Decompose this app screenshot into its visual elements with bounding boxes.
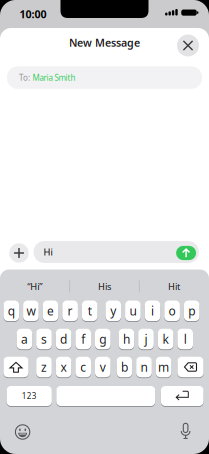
button[interactable]: v [95, 356, 111, 378]
button[interactable]: q [3, 300, 19, 322]
staticText: e [47, 303, 54, 319]
staticText: New Message [69, 35, 140, 50]
button[interactable]: Return [161, 385, 203, 406]
staticText: i [151, 303, 154, 319]
staticText: c [80, 359, 86, 375]
button[interactable]: b [117, 356, 132, 378]
button[interactable]: Dictation [179, 423, 193, 440]
button[interactable]: w [23, 300, 39, 322]
staticText: v [100, 359, 106, 375]
button[interactable]: Shift [3, 356, 28, 378]
staticText: To: [19, 72, 30, 83]
staticText: u [129, 303, 136, 319]
button[interactable]: y [105, 300, 121, 322]
staticText: y [110, 303, 116, 319]
staticText: a [21, 331, 28, 347]
staticText: r [68, 303, 73, 319]
button[interactable]: f [75, 328, 91, 350]
staticText: Maria Smith [32, 72, 75, 83]
staticText: f [81, 331, 85, 347]
button[interactable]: g [95, 328, 111, 350]
staticText: x [61, 359, 67, 375]
staticText: j [144, 331, 147, 347]
staticText: 10:00 [19, 7, 46, 21]
button[interactable]: u [125, 300, 141, 322]
staticText: Hi [43, 246, 52, 258]
button[interactable]: l [177, 328, 193, 350]
staticText: His [98, 280, 111, 293]
staticText: o [169, 303, 176, 319]
button[interactable]: s [36, 328, 52, 350]
staticText: z [41, 359, 47, 375]
button[interactable]: Close [177, 34, 199, 56]
staticText: h [123, 331, 130, 347]
button[interactable]: h [119, 328, 134, 350]
button[interactable]: m [156, 356, 171, 378]
button[interactable]: c [75, 356, 91, 378]
staticText: 123 [22, 391, 37, 401]
staticText: s [41, 331, 47, 347]
button[interactable]: Message [33, 241, 199, 263]
staticText: g [99, 331, 106, 347]
staticText: p [188, 303, 195, 319]
button[interactable]: j [138, 328, 154, 350]
button[interactable]: n [136, 356, 152, 378]
button[interactable]: a [17, 328, 32, 350]
staticText: q [8, 303, 15, 319]
button[interactable]: Add attachment [9, 243, 29, 263]
button[interactable]: t [82, 300, 97, 322]
staticText: t [88, 303, 92, 319]
staticText: Hit [168, 280, 180, 293]
button[interactable]: Space [56, 385, 155, 406]
button[interactable]: Delete [177, 356, 203, 378]
button[interactable]: k [158, 328, 173, 350]
button[interactable]: z [36, 356, 52, 378]
staticText: w [26, 303, 35, 319]
button[interactable]: Hit [144, 278, 204, 294]
button[interactable]: r [62, 300, 78, 322]
staticText: k [163, 331, 169, 347]
button[interactable]: o [164, 300, 180, 322]
button[interactable]: e [43, 300, 58, 322]
button[interactable]: To: [7, 66, 202, 89]
button[interactable]: d [56, 328, 71, 350]
button[interactable]: His [74, 278, 134, 294]
staticText: n [140, 359, 147, 375]
button[interactable]: i [145, 300, 160, 322]
staticText: “Hi” [27, 280, 42, 293]
button[interactable]: Emoji [15, 424, 31, 440]
button[interactable]: x [56, 356, 71, 378]
staticText: l [184, 331, 187, 347]
staticText: m [158, 359, 169, 375]
staticText: d [60, 331, 67, 347]
button[interactable]: “Hi” [5, 278, 65, 294]
button[interactable]: Send [176, 246, 196, 260]
button[interactable]: p [184, 300, 199, 322]
button[interactable]: 123 [7, 385, 52, 406]
staticText: b [121, 359, 128, 375]
